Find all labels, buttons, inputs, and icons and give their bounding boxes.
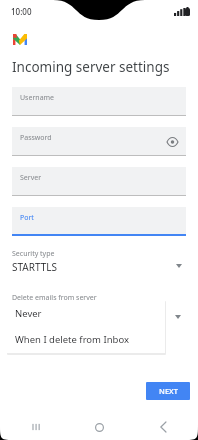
button[interactable]: Port (12, 207, 186, 236)
button[interactable]: Show password (164, 134, 180, 150)
button[interactable]: Security type (0, 248, 198, 278)
button[interactable]: Back (150, 414, 176, 440)
staticText: 10:00 (11, 6, 32, 17)
button[interactable]: Never (6, 300, 165, 326)
staticText: Never (15, 307, 42, 320)
staticText: Security type (12, 249, 55, 259)
staticText: Server (20, 173, 42, 183)
button[interactable]: Delete emails from server (0, 292, 198, 304)
button[interactable]: Username (12, 87, 186, 116)
staticText: Delete emails from server (12, 293, 97, 303)
staticText: STARTTLS (12, 260, 58, 274)
button[interactable]: Recents (22, 414, 48, 440)
button[interactable]: Home (86, 414, 112, 440)
button[interactable]: Password (12, 127, 186, 156)
staticText: Username (20, 93, 55, 103)
staticText: Port (20, 213, 34, 223)
button[interactable]: When I delete from Inbox (6, 326, 165, 353)
staticText: Incoming server settings (12, 58, 170, 76)
staticText: When I delete from Inbox (15, 333, 129, 346)
other: Expand delete emails (173, 312, 183, 322)
other: Expand Security type (174, 261, 184, 271)
button[interactable]: NEXT (146, 382, 190, 400)
staticText: NEXT (159, 386, 178, 396)
staticText: Password (20, 133, 52, 143)
button[interactable]: Server (12, 167, 186, 196)
